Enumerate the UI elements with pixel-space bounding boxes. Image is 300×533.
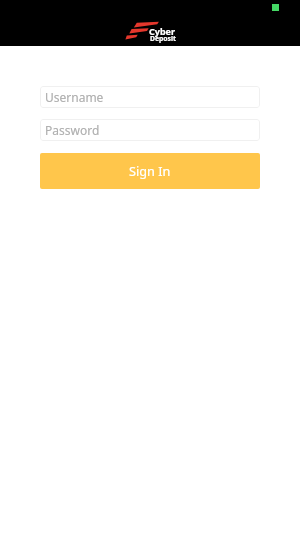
button[interactable]: Password xyxy=(40,119,260,141)
staticText: Cyber xyxy=(149,25,176,37)
staticText: Password xyxy=(45,122,100,138)
staticText: Username xyxy=(45,89,104,105)
staticText: Sign In xyxy=(129,162,171,179)
button[interactable]: Sign In xyxy=(40,153,260,189)
button[interactable]: Username xyxy=(40,86,260,108)
staticText: Deposit xyxy=(150,34,176,43)
